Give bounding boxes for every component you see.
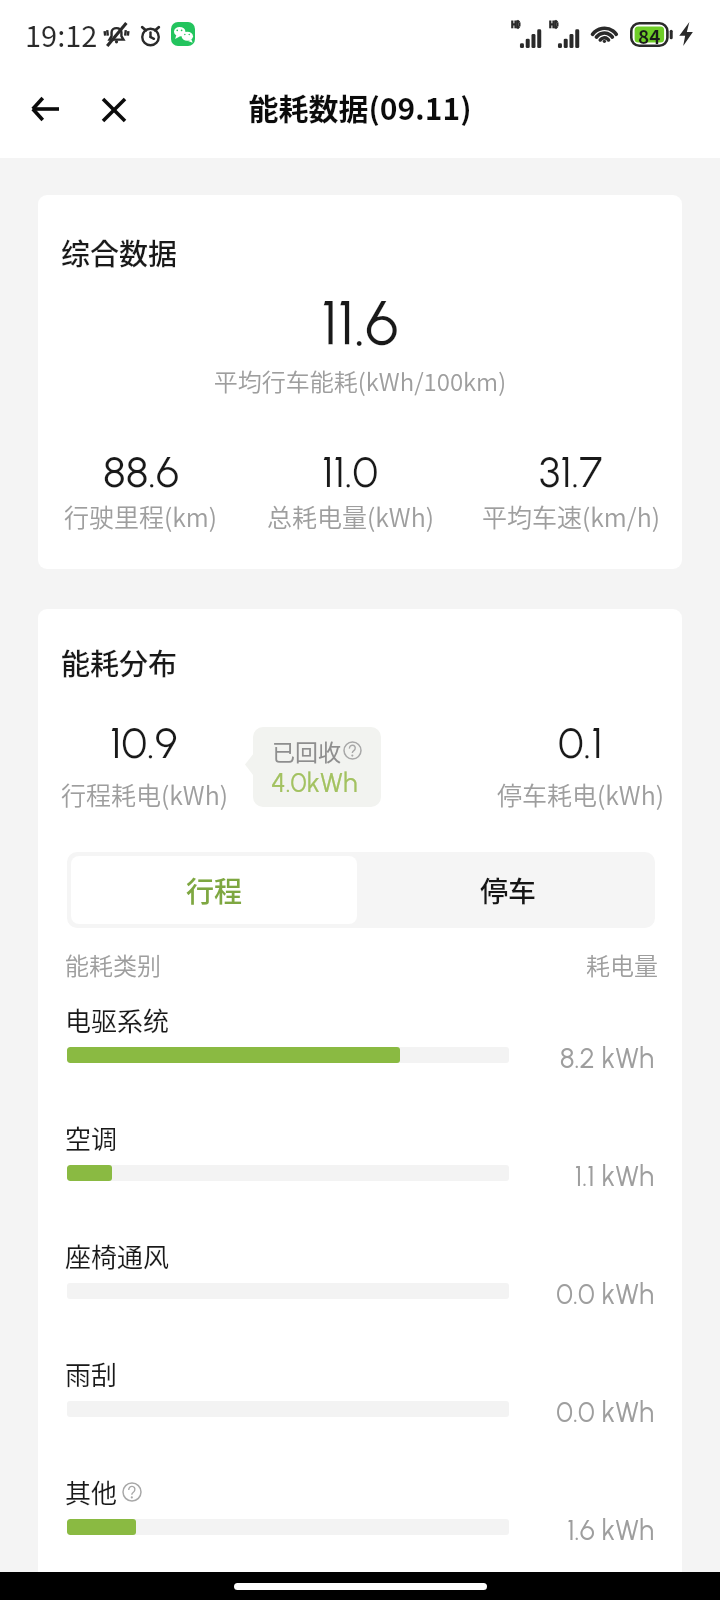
staticText: 能耗类别 [65, 947, 161, 982]
staticText: 0.0 kWh [38, 1395, 654, 1429]
staticText: 总耗电量(kWh) [267, 498, 434, 534]
staticText: 停车 [480, 870, 537, 911]
staticText: 1.1 kWh [38, 1159, 654, 1193]
staticText: 88.6 [103, 446, 180, 498]
staticText: 雨刮 [65, 1355, 118, 1393]
staticText: 0.1 [558, 717, 603, 769]
staticText: 8.2 kWh [38, 1041, 654, 1075]
staticText: 综合数据 [61, 231, 178, 273]
staticText: 84 [638, 22, 661, 47]
staticText: 行驶里程(km) [64, 498, 218, 534]
button[interactable]: Back [9, 64, 81, 154]
button[interactable]: 停车 [361, 852, 655, 928]
staticText: 10.9 [110, 717, 178, 769]
staticText: 其他 [65, 1473, 118, 1511]
staticText: 平均行车能耗(kWh/100km) [38, 363, 682, 398]
staticText: 已回收 [272, 734, 341, 767]
staticText: 平均车速(km/h) [482, 498, 660, 534]
staticText: 空调 [65, 1119, 118, 1157]
staticText: 行程 [186, 870, 243, 911]
staticText: 31.7 [539, 446, 603, 498]
staticText: 行程耗电(kWh) [61, 776, 228, 812]
staticText: 能耗分布 [61, 641, 178, 683]
staticText: 停车耗电(kWh) [497, 776, 664, 812]
staticText: 19:12 [25, 13, 98, 55]
staticText: 座椅通风 [65, 1237, 170, 1275]
staticText: 耗电量 [586, 947, 658, 982]
staticText: 4.0kWh [271, 766, 358, 798]
button[interactable]: Close [79, 65, 149, 155]
staticText: 能耗数据(09.11) [0, 85, 720, 158]
staticText: 0.0 kWh [38, 1277, 654, 1311]
staticText: 电驱系统 [65, 1001, 170, 1039]
button[interactable]: 行程 [71, 856, 357, 924]
staticText: 1.6 kWh [38, 1513, 654, 1547]
staticText: 11.0 [322, 446, 379, 498]
staticText: 11.6 [38, 286, 682, 360]
